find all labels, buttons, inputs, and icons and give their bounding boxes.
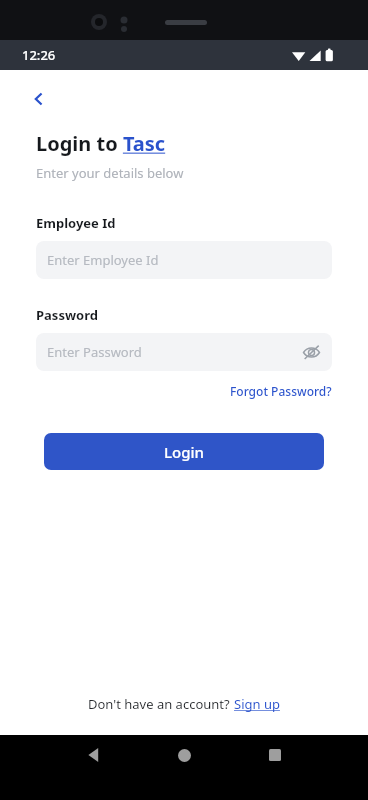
staticText: Login [164,442,204,462]
staticText: Enter your details below [36,164,184,182]
staticText: 12:26 [22,46,56,64]
staticText: Password [36,306,98,324]
staticText: Employee Id [36,214,116,232]
staticText: Don't have an account? [88,695,234,713]
button[interactable]: Enter Password [36,333,332,371]
button[interactable]: Enter Employee Id [36,241,332,279]
button[interactable]: Forgot Password? [230,383,332,399]
button[interactable]: Recent apps [260,740,290,770]
button[interactable]: Home [169,740,199,770]
button[interactable]: Back [22,82,56,116]
button[interactable]: Back [79,740,109,770]
staticText: Login to Tasc [36,130,166,157]
staticText: Enter Password [47,343,142,361]
button[interactable]: Show password [296,337,326,367]
button[interactable]: Login [44,433,324,470]
staticText: Enter Employee Id [47,251,159,269]
button[interactable]: Sign up [234,695,280,713]
